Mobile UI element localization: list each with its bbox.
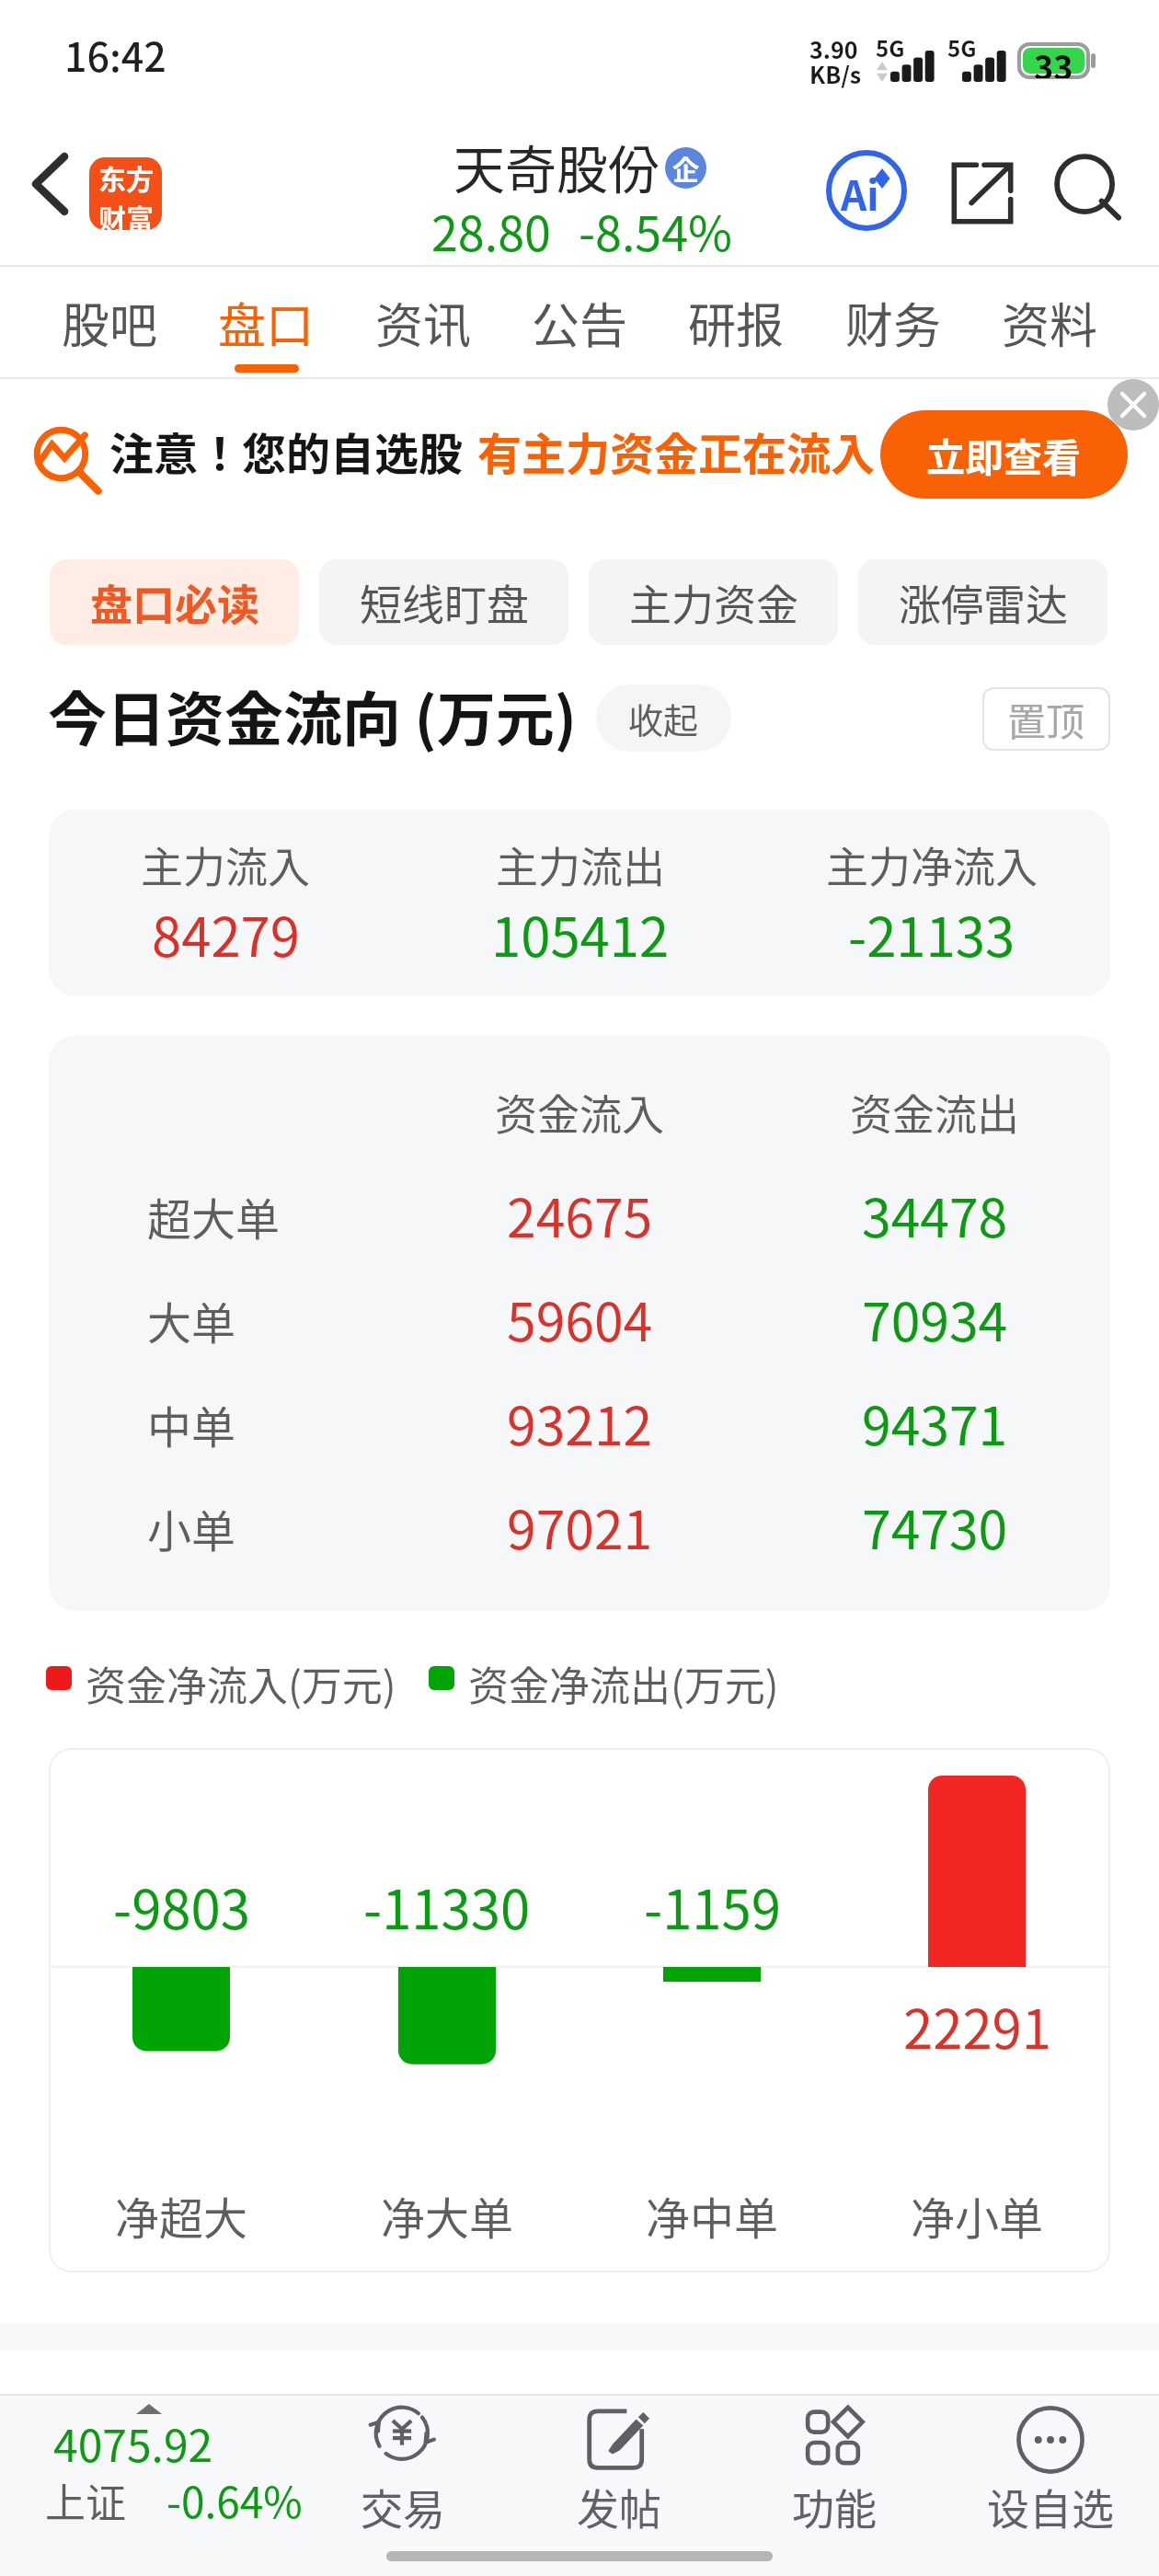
staticText: 小单 [147,1496,236,1560]
staticText: 今日资金流向 (万元) [48,673,577,758]
staticText: 东方 [98,157,154,197]
button[interactable]: 资料 [971,267,1128,379]
staticText: -1159 [644,1868,781,1945]
button[interactable]: 盘口必读 [50,559,299,645]
button[interactable]: Search [1050,150,1137,236]
staticText: 企 [672,149,700,188]
button[interactable] [49,1385,1110,1489]
staticText: 22291 [903,1987,1051,2064]
staticText: 资金流出 [850,1081,1019,1143]
button[interactable]: 4075.92 [18,2396,313,2534]
staticText: 资金净流入(万元) [86,1654,396,1713]
button[interactable]: 涨停雷达 [858,559,1107,645]
staticText: -8.54% [579,196,732,265]
staticText: -11330 [363,1868,531,1945]
staticText: 交易 [361,2476,445,2537]
button[interactable]: 收起 [596,684,731,752]
button[interactable]: 功能 [733,2396,935,2534]
button[interactable]: 财务 [815,267,971,379]
staticText: 资金流入 [495,1081,664,1143]
staticText: 70934 [862,1281,1008,1357]
button[interactable]: -9803 [49,1748,1110,2272]
staticText: -0.64% [166,2469,303,2531]
staticText: 93212 [507,1385,653,1461]
button[interactable]: 主力净流入 [757,810,1107,996]
staticText: 28.80 [431,196,551,265]
button[interactable]: 置顶 [982,687,1110,751]
button[interactable] [49,1177,1110,1281]
button[interactable]: Back [13,138,86,230]
staticText: 资料 [1002,288,1098,357]
button[interactable]: 立即查看 [880,410,1128,499]
staticText: 公告 [532,288,628,357]
staticText: 5G [947,31,977,63]
staticText: 主力流出 [496,834,665,895]
staticText: 有主力资金正在流入 [477,419,876,483]
staticText: 34478 [862,1177,1008,1253]
staticText: 资金净流出(万元) [468,1654,779,1713]
button[interactable]: 主力资金 [589,559,838,645]
button[interactable]: Share [939,150,1026,236]
staticText: Ai [841,164,879,223]
button[interactable]: 股吧 [31,267,188,379]
button[interactable]: 主力流出 [406,810,755,996]
staticText: 盘口 [218,288,315,357]
staticText: 3.90 [809,32,858,65]
staticText: 上证 [45,2471,126,2530]
staticText: 功能 [792,2476,877,2537]
button[interactable]: 短线盯盘 [319,559,568,645]
staticText: 立即查看 [926,427,1082,483]
staticText: 天奇股份 [453,129,660,203]
staticText: 注意！您的自选股 [109,419,464,483]
staticText: 净中单 [646,2183,779,2248]
staticText: 主力流入 [141,834,310,895]
staticText: 5G [876,31,905,63]
staticText: 盘口必读 [90,571,259,633]
button[interactable] [49,1489,1110,1593]
staticText: KB/s [809,57,862,90]
staticText: 中单 [147,1392,236,1456]
button[interactable]: 主力流入 [51,810,400,996]
staticText: -21133 [848,895,1016,972]
button[interactable]: 发帖 [518,2396,720,2534]
staticText: 财务 [845,288,942,357]
staticText: 资讯 [375,288,472,357]
staticText: 33 [1034,41,1073,78]
staticText: 财富 [98,197,154,230]
button[interactable]: 交易 [302,2396,504,2534]
staticText: 97021 [507,1489,653,1565]
staticText: 主力资金 [629,571,798,633]
button[interactable]: 盘口 [188,267,344,379]
staticText: 16:42 [64,26,166,83]
staticText: 收起 [628,693,699,743]
staticText: 24675 [507,1177,653,1253]
button[interactable]: East Money home [89,157,162,230]
staticText: 84279 [152,895,300,972]
button[interactable]: Close banner [1107,379,1159,431]
staticText: 置顶 [1007,691,1085,747]
button[interactable]: AI assistant [824,148,909,233]
button[interactable]: 资讯 [345,267,501,379]
staticText: 股吧 [62,288,158,357]
staticText: 94371 [862,1385,1008,1461]
staticText: 主力净流入 [826,834,1038,895]
button[interactable]: 设自选 [949,2396,1152,2534]
staticText: 4075.92 [53,2410,213,2475]
staticText: 净超大 [115,2183,248,2248]
button[interactable]: 研报 [658,267,814,379]
staticText: 短线盯盘 [360,571,529,633]
staticText: -9803 [113,1868,250,1945]
staticText: 设自选 [987,2476,1114,2537]
staticText: 超大单 [147,1184,281,1248]
button[interactable]: 公告 [501,267,658,379]
staticText: 研报 [688,288,785,357]
staticText: 净小单 [911,2183,1044,2248]
staticText: 涨停雷达 [899,571,1068,633]
staticText: 74730 [862,1489,1008,1565]
staticText: 大单 [147,1288,236,1352]
staticText: 105412 [491,895,670,972]
staticText: 59604 [507,1281,653,1357]
button[interactable] [49,1281,1110,1385]
staticText: 发帖 [577,2476,661,2537]
staticText: 净大单 [381,2183,514,2248]
